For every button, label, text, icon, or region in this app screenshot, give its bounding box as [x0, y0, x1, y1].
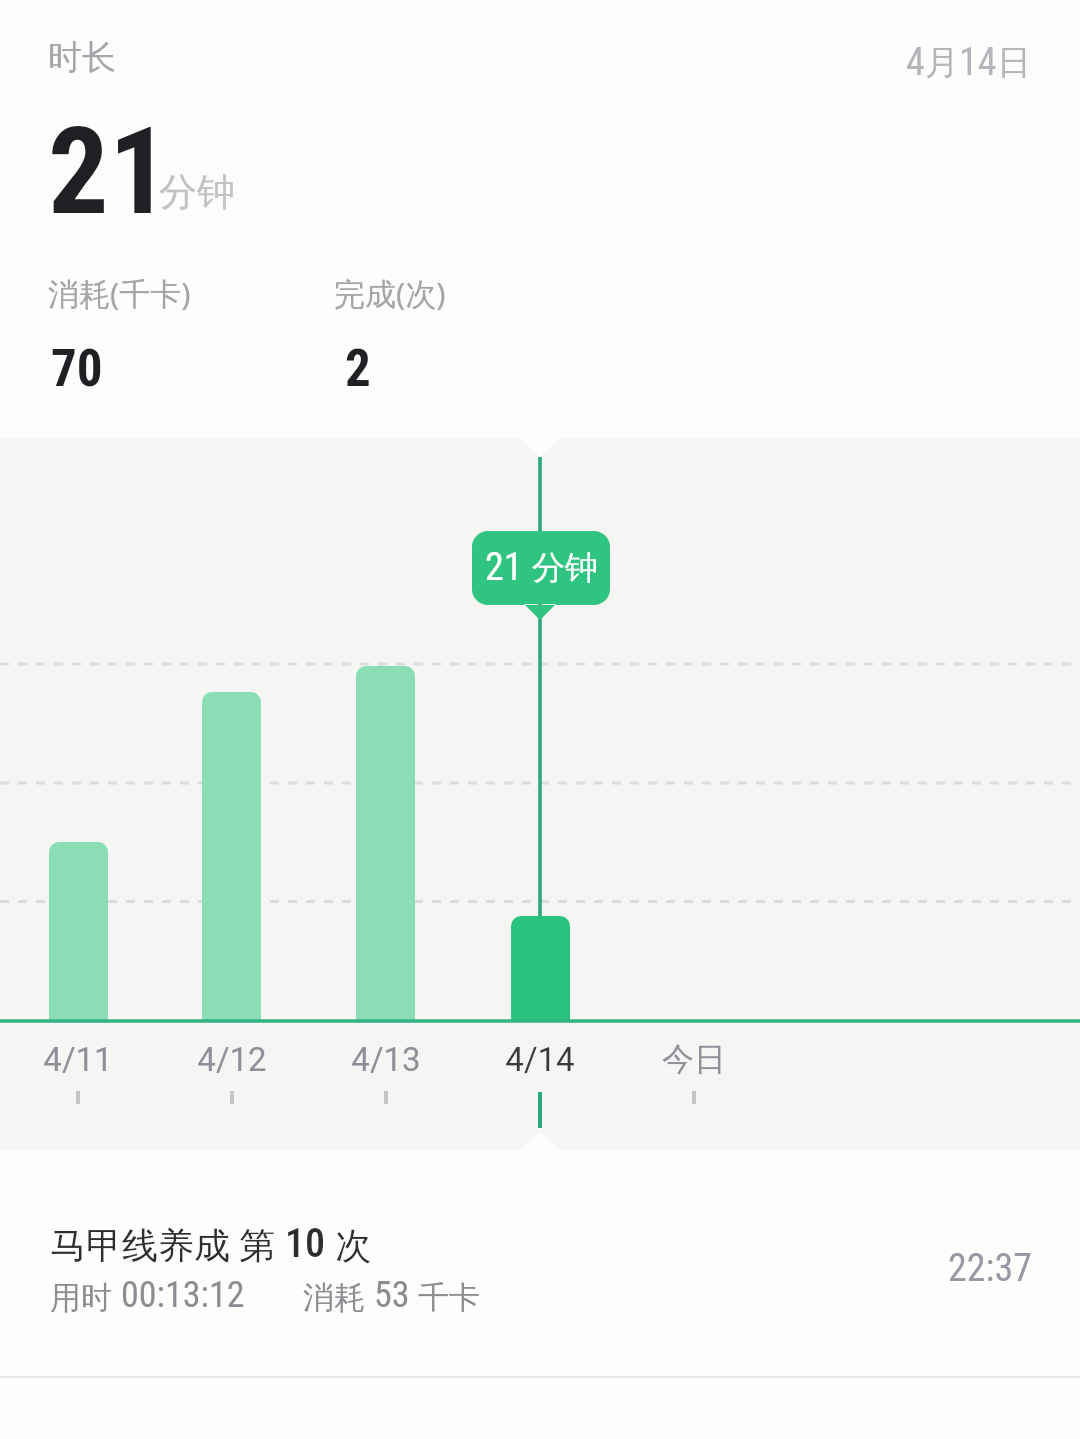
staticText: 4/12: [197, 1040, 267, 1079]
staticText: 今日: [662, 1039, 726, 1079]
staticText: 4/14: [505, 1040, 575, 1079]
button[interactable]: 马甲线养成 第: [0, 1201, 1080, 1335]
button[interactable]: 4/14: [463, 1036, 617, 1082]
staticText: 分钟: [532, 547, 598, 589]
staticText: 分钟: [159, 168, 235, 216]
staticText: 消耗(千卡): [48, 272, 191, 314]
staticText: 4/11: [43, 1040, 113, 1079]
staticText: 21: [485, 545, 532, 590]
staticText: 千卡: [410, 1275, 481, 1317]
staticText: 用时: [50, 1275, 121, 1317]
staticText: 22:37: [948, 1246, 1032, 1291]
staticText: 消耗: [303, 1275, 374, 1317]
staticText: 21: [48, 102, 170, 243]
staticText: 4: [906, 40, 925, 85]
button[interactable]: 4/11: [1, 1036, 155, 1082]
staticText: 月: [925, 41, 959, 84]
button[interactable]: 4/13: [309, 1036, 463, 1082]
staticText: 次: [326, 1220, 372, 1269]
staticText: 日: [997, 41, 1031, 84]
staticText: 70: [51, 339, 103, 399]
staticText: 53: [374, 1274, 410, 1316]
button[interactable]: 今日: [617, 1036, 771, 1082]
staticText: 时长: [48, 36, 116, 79]
staticText: 10: [285, 1220, 326, 1267]
staticText: 2: [345, 339, 371, 399]
staticText: 00:13:12: [121, 1274, 245, 1316]
button[interactable]: 4/12: [155, 1036, 309, 1082]
staticText: 4/13: [351, 1040, 421, 1079]
staticText: 马甲线养成 第: [50, 1220, 285, 1269]
staticText: 完成(次): [334, 272, 446, 314]
staticText: 14: [959, 40, 997, 85]
